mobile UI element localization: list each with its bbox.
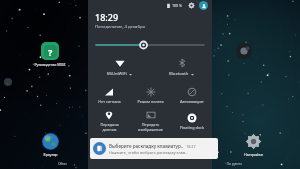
- button[interactable]: Выберите раскладку клавиатур..: [90, 138, 218, 159]
- button[interactable]: [96, 38, 204, 52]
- staticText: Floating dock: [180, 125, 204, 130]
- button[interactable]: Браузер: [33, 133, 67, 157]
- button[interactable]: Передать изображение: [130, 108, 171, 134]
- button[interactable]: User profile: [199, 1, 208, 10]
- button[interactable]: Bluetooth: [150, 54, 212, 80]
- staticText: Браузер: [43, 152, 58, 157]
- staticText: 18:27: [186, 144, 196, 149]
- staticText: Выберите раскладку клавиатур..: [109, 143, 184, 149]
- button[interactable]: Настройки: [236, 133, 270, 157]
- staticText: Нажмите, чтобы выбрать раскладку клав...: [109, 150, 189, 155]
- staticText: 100 %: [172, 3, 183, 8]
- button[interactable]: Floating dock: [171, 108, 212, 134]
- staticText: За рулем: [227, 161, 242, 166]
- button[interactable]: Режим полета: [130, 82, 171, 108]
- button[interactable]: Передача данных: [88, 108, 130, 134]
- staticText: Автоповорот: [180, 99, 204, 104]
- staticText: Настройки: [244, 152, 263, 157]
- staticText: ?: [48, 46, 53, 58]
- staticText: Обои: [58, 161, 67, 166]
- staticText: Передать изображение: [138, 122, 163, 132]
- staticText: Передача данных: [100, 122, 119, 132]
- button[interactable]: MiUniWiFi: [88, 54, 150, 80]
- staticText: Руководство MIUI: [34, 62, 66, 67]
- button[interactable]: Settings: [187, 1, 195, 9]
- staticText: Нет сигнала: [98, 99, 121, 104]
- button[interactable]: ?: [32, 42, 68, 67]
- staticText: Режим полета: [137, 99, 164, 104]
- button[interactable]: Автоповорот: [171, 82, 212, 108]
- staticText: 18:29: [95, 11, 119, 23]
- staticText: MiUniWiFi: [107, 71, 127, 77]
- staticText: Понедельник, 4 декабря: [95, 24, 145, 30]
- staticText: Bluetooth: [169, 71, 189, 77]
- button[interactable]: Нет сигнала: [88, 82, 130, 108]
